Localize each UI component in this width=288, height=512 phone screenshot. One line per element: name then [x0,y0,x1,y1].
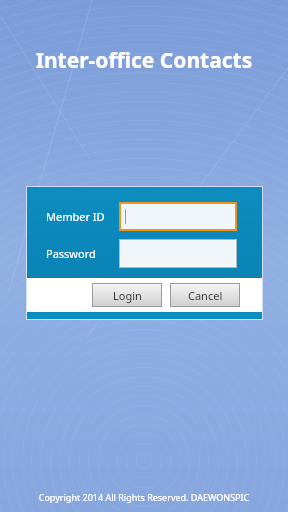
staticText: Member ID [46,209,119,224]
staticText: Cancel [188,288,223,303]
button[interactable]: Login [93,284,161,306]
staticText: Copyright 2014 All Rights Reserved. DAEW… [0,491,288,503]
staticText: Password [46,246,119,261]
button[interactable]: Cancel [171,284,239,306]
staticText: Login [113,288,142,303]
button[interactable] [121,204,235,229]
staticText: Inter-office Contacts [0,46,288,75]
